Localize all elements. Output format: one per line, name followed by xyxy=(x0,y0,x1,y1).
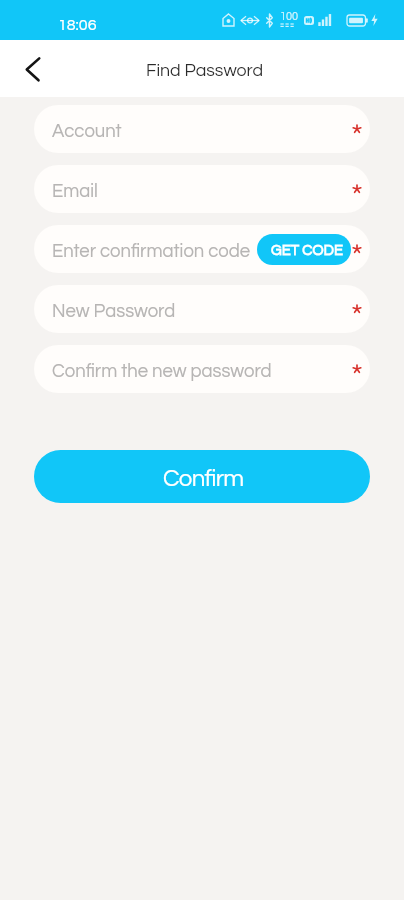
staticText: 100 xyxy=(280,11,298,22)
button[interactable]: Enter confirmation code xyxy=(34,225,370,273)
staticText: 18:06 xyxy=(58,17,97,33)
staticText: New Password xyxy=(52,302,176,321)
button[interactable]: Account xyxy=(34,105,370,153)
staticText: Email xyxy=(52,182,98,201)
button[interactable]: Confirm the new password xyxy=(34,345,370,393)
staticText: Confirm the new password xyxy=(52,362,272,381)
button[interactable]: Email xyxy=(34,165,370,213)
button[interactable]: Confirm xyxy=(34,450,370,503)
button[interactable]: New Password xyxy=(34,285,370,333)
staticText: Find Password xyxy=(146,61,264,79)
button[interactable]: GET CODE xyxy=(257,234,351,265)
staticText: Enter confirmation code xyxy=(52,242,251,261)
staticText: Account xyxy=(52,122,122,141)
button[interactable]: Back xyxy=(10,47,54,91)
staticText: GET CODE xyxy=(271,243,343,258)
staticText: Confirm xyxy=(163,466,244,491)
